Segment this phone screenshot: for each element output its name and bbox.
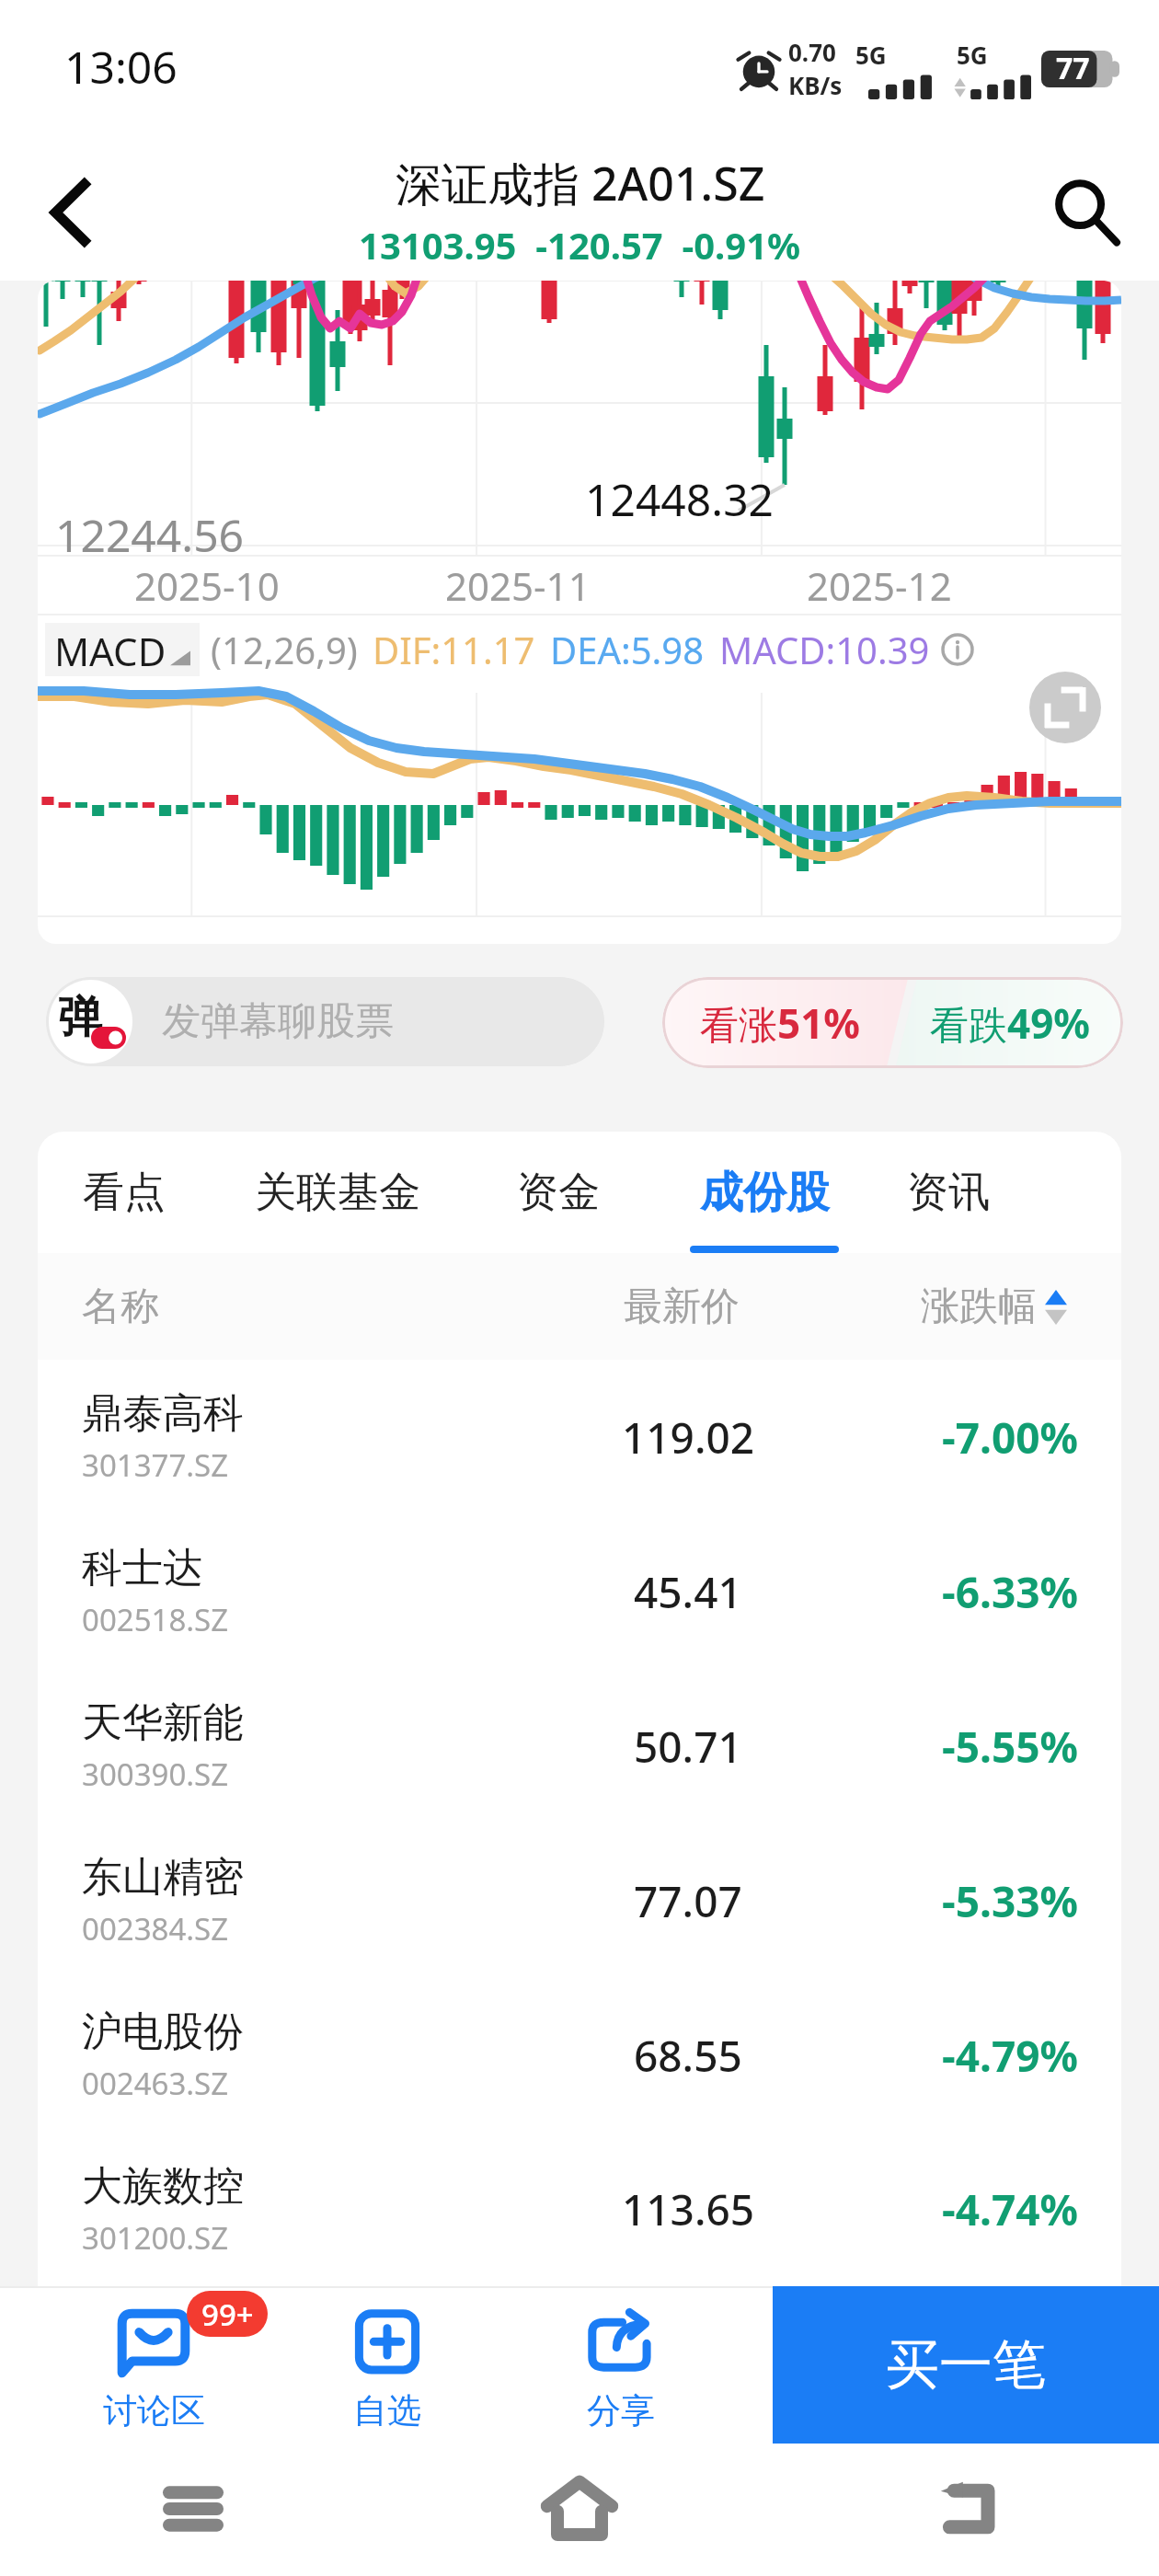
staticText: 49% <box>1007 995 1091 1051</box>
staticText: -7.00% <box>942 1409 1079 1466</box>
staticText: (12,26,9) <box>211 625 358 674</box>
staticText: 发弹幕聊股票 <box>162 997 394 1046</box>
staticText: 名称 <box>82 1282 159 1331</box>
button[interactable]: 沪电股份 <box>38 1978 1121 2133</box>
staticText: 002518.SZ <box>82 1599 229 1640</box>
staticText: 科士达 <box>82 1543 203 1593</box>
button[interactable]: Recents <box>0 2444 386 2576</box>
staticText: 资讯 <box>907 1167 990 1219</box>
staticText: 50.71 <box>634 1718 742 1776</box>
staticText: 113.65 <box>622 2180 755 2238</box>
staticText: DIF:11.17 <box>373 625 535 674</box>
button[interactable]: Back <box>773 2444 1159 2576</box>
button[interactable]: Search <box>1039 167 1131 259</box>
staticText: 鼎泰高科 <box>82 1388 244 1439</box>
staticText: 2025-12 <box>807 559 952 612</box>
staticText: 301377.SZ <box>82 1444 229 1486</box>
staticText: 13:06 <box>64 37 178 97</box>
staticText: -5.55% <box>942 1718 1079 1776</box>
button[interactable]: MACD <box>54 625 190 674</box>
button[interactable]: 资讯 <box>866 1132 1031 1253</box>
staticText: 2025-10 <box>134 559 280 612</box>
staticText: 看跌 <box>930 1002 1007 1051</box>
button[interactable]: 看点 <box>38 1132 225 1253</box>
button[interactable]: Home <box>386 2444 773 2576</box>
button[interactable]: 资金 <box>457 1132 660 1253</box>
button[interactable]: 天华新能 <box>38 1669 1121 1823</box>
staticText: 弹 <box>58 990 102 1045</box>
button[interactable]: 分享 <box>504 2286 738 2444</box>
button[interactable]: Back <box>26 167 118 259</box>
staticText: 0.70 <box>788 36 836 68</box>
staticText: 资金 <box>517 1167 600 1219</box>
button[interactable]: 大族数控 <box>38 2133 1121 2286</box>
staticText: 看涨 <box>700 1002 777 1051</box>
button[interactable]: 99+ <box>37 2286 270 2444</box>
staticText: 涨跌幅 <box>921 1282 1037 1331</box>
staticText: -5.33% <box>942 1872 1079 1930</box>
staticText: 自选 <box>353 2389 421 2432</box>
staticText: 成份股 <box>700 1166 830 1220</box>
staticText: MACD <box>54 625 166 674</box>
staticText: 45.41 <box>634 1563 742 1621</box>
staticText: 68.55 <box>634 2027 742 2085</box>
button[interactable]: 东山精密 <box>38 1823 1121 1978</box>
staticText: 77 <box>1056 48 1090 88</box>
staticText: KB/s <box>788 69 843 101</box>
button[interactable]: 弹 <box>46 977 604 1066</box>
button[interactable]: Fullscreen <box>1029 672 1101 743</box>
staticText: 77.07 <box>634 1872 742 1930</box>
button[interactable]: 关联基金 <box>181 1132 494 1253</box>
staticText: 99+ <box>201 2294 254 2335</box>
staticText: 12244.56 <box>55 505 245 565</box>
staticText: DEA:5.98 <box>550 625 705 674</box>
button[interactable]: 鼎泰高科 <box>38 1360 1121 1514</box>
staticText: MACD:10.39 <box>719 625 930 674</box>
staticText: -4.74% <box>942 2180 1079 2238</box>
staticText: -6.33% <box>942 1563 1079 1621</box>
staticText: 51% <box>777 995 861 1051</box>
button[interactable]: 自选 <box>270 2286 504 2444</box>
staticText: 关联基金 <box>255 1167 420 1219</box>
staticText: 买一笔 <box>886 2331 1046 2398</box>
staticText: 12448.32 <box>585 469 775 529</box>
button[interactable]: 成份股 <box>654 1132 875 1253</box>
button[interactable]: 科士达 <box>38 1514 1121 1669</box>
staticText: 深证成指 2A01.SZ <box>396 152 765 214</box>
staticText: 300390.SZ <box>82 1754 229 1795</box>
staticText: 最新价 <box>624 1282 740 1331</box>
staticText: 002384.SZ <box>82 1908 229 1949</box>
staticText: 大族数控 <box>82 2161 244 2212</box>
staticText: 301200.SZ <box>82 2217 229 2259</box>
staticText: -4.79% <box>942 2027 1079 2085</box>
staticText: 002463.SZ <box>82 2063 229 2104</box>
staticText: 看点 <box>83 1167 166 1219</box>
button[interactable]: 买一笔 <box>773 2286 1159 2444</box>
staticText: 讨论区 <box>103 2389 205 2432</box>
staticText: 13103.95 -120.57 -0.91% <box>359 220 801 270</box>
staticText: 东山精密 <box>82 1852 244 1903</box>
staticText: 沪电股份 <box>82 2007 244 2057</box>
staticText: 5G <box>855 39 887 71</box>
staticText: 2025-11 <box>445 559 591 612</box>
staticText: 5G <box>957 39 988 71</box>
button[interactable]: 看涨 <box>662 977 1123 1068</box>
staticText: 119.02 <box>622 1409 755 1466</box>
staticText: 分享 <box>587 2389 655 2432</box>
staticText: 天华新能 <box>82 1697 244 1748</box>
